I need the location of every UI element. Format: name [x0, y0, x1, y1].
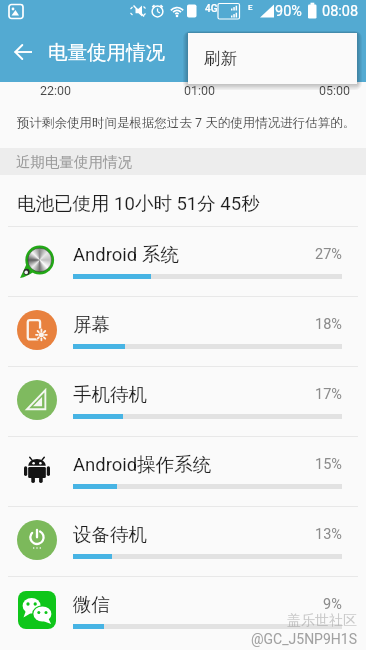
staticText: 05:00	[319, 83, 351, 98]
staticText: 13%	[315, 526, 342, 543]
staticText: 手机待机	[73, 383, 147, 406]
button[interactable]: 刷新	[188, 33, 357, 84]
button[interactable]: 设备待机	[0, 506, 366, 576]
staticText: 预计剩余使用时间是根据您过去 7 天的使用情况进行估算的。	[17, 115, 356, 131]
staticText: 08:08	[322, 3, 359, 20]
button[interactable]: Android操作系统	[0, 436, 366, 506]
staticText: 15%	[315, 456, 342, 473]
button[interactable]: Back	[7, 35, 41, 69]
staticText: 设备待机	[73, 523, 147, 546]
staticText: 27%	[315, 246, 342, 263]
staticText: 22:00	[40, 83, 72, 98]
button[interactable]: 屏幕	[0, 296, 366, 366]
staticText: 90%	[275, 3, 302, 20]
staticText: 屏幕	[73, 313, 110, 336]
staticText: 电池已使用 10小时 51分 45秒	[17, 192, 260, 215]
staticText: 01:00	[184, 83, 216, 98]
staticText: 刷新	[204, 48, 237, 69]
staticText: 盖乐世社区	[287, 612, 357, 630]
button[interactable]: 手机待机	[0, 366, 366, 436]
button[interactable]: Android 系统	[0, 226, 366, 296]
staticText: @GC_J5NP9H1S	[251, 631, 357, 647]
staticText: 4G	[205, 3, 218, 15]
staticText: 18%	[315, 316, 342, 333]
staticText: E	[248, 3, 253, 12]
staticText: 17%	[315, 386, 342, 403]
staticText: 近期电量使用情况	[16, 153, 132, 171]
button[interactable]: 微信	[0, 576, 366, 646]
staticText: Android 系统	[73, 243, 179, 266]
staticText: Android操作系统	[73, 453, 212, 476]
staticText: 电量使用情况	[48, 40, 165, 65]
staticText: 微信	[73, 593, 110, 616]
staticText: 9%	[323, 596, 342, 613]
